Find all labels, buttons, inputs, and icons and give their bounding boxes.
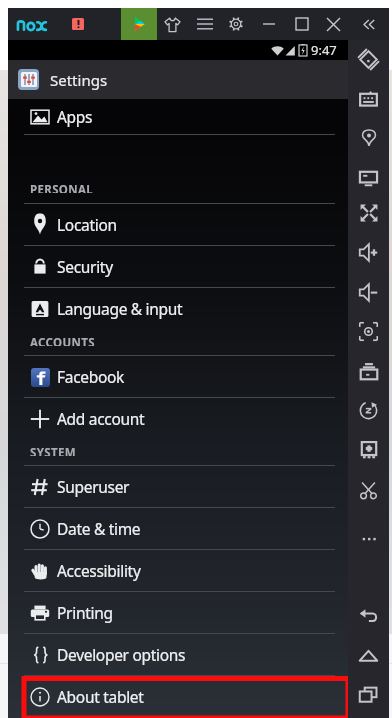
button[interactable]: Settings xyxy=(8,60,348,99)
button[interactable]: Cut xyxy=(348,471,389,509)
button[interactable]: Add account xyxy=(8,398,348,439)
button[interactable]: Location xyxy=(8,204,348,245)
button[interactable]: Minimize xyxy=(254,8,284,40)
staticText: SYSTEM xyxy=(30,445,76,456)
button[interactable]: Refresh xyxy=(348,391,389,429)
button[interactable]: Home xyxy=(348,637,389,675)
button[interactable]: Apps xyxy=(8,99,348,134)
staticText: About tablet xyxy=(57,686,144,707)
staticText: PERSONAL xyxy=(30,182,94,193)
button[interactable]: Close xyxy=(318,8,348,40)
staticText: Security xyxy=(57,256,113,277)
button[interactable]: Recent apps xyxy=(348,675,389,713)
button[interactable]: Keyboard xyxy=(348,80,389,118)
staticText: Facebook xyxy=(57,366,125,387)
button[interactable]: Superuser xyxy=(8,466,348,507)
button[interactable]: Nox xyxy=(12,13,50,35)
staticText: Superuser xyxy=(57,476,130,497)
button[interactable]: Volume up xyxy=(348,233,389,271)
staticText: 9:47 xyxy=(311,41,337,59)
button[interactable]: Settings xyxy=(221,8,251,40)
button[interactable]: Virtual screen xyxy=(348,158,389,196)
button[interactable]: Security xyxy=(8,246,348,287)
button[interactable]: About tablet xyxy=(8,676,348,717)
button[interactable]: More xyxy=(348,520,389,558)
button[interactable]: Language & input xyxy=(8,288,348,329)
staticText: Settings xyxy=(50,70,108,90)
button[interactable]: Screenshot xyxy=(348,312,389,350)
staticText: Developer options xyxy=(57,644,186,665)
button[interactable]: Screen record xyxy=(348,352,389,390)
button[interactable]: Accessibility xyxy=(8,550,348,591)
button[interactable]: Rotate screen xyxy=(348,40,389,78)
button[interactable]: Back xyxy=(348,597,389,635)
button[interactable]: Developer options xyxy=(8,634,348,675)
button[interactable]: Install APK xyxy=(348,431,389,469)
button[interactable]: Volume down xyxy=(348,273,389,311)
staticText: Add account xyxy=(57,408,145,429)
button[interactable]: Fullscreen xyxy=(348,194,389,232)
staticText: Language & input xyxy=(57,298,183,319)
staticText: Printing xyxy=(57,602,113,623)
button[interactable]: Theme xyxy=(157,8,187,40)
button[interactable]: Date & time xyxy=(8,508,348,549)
staticText: Location xyxy=(57,214,117,235)
button[interactable]: Notice xyxy=(64,10,92,38)
staticText: Apps xyxy=(57,106,93,127)
staticText: Date & time xyxy=(57,518,141,539)
button[interactable]: Collapse sidebar xyxy=(353,8,383,40)
button[interactable]: Location xyxy=(348,119,389,157)
button[interactable]: Printing xyxy=(8,592,348,633)
button[interactable]: Menu xyxy=(190,8,220,40)
button[interactable]: Play Store xyxy=(121,8,157,40)
staticText: ACCOUNTS xyxy=(30,335,95,346)
button[interactable]: Maximize xyxy=(287,8,317,40)
button[interactable]: Facebook xyxy=(8,356,348,397)
staticText: Accessibility xyxy=(57,560,141,581)
